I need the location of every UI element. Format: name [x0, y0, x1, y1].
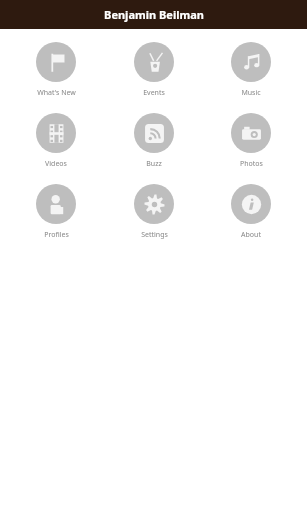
button[interactable]: Videos — [14, 113, 98, 169]
button[interactable]: What's New — [14, 42, 98, 98]
button[interactable]: About — [209, 184, 293, 240]
button[interactable]: Photos — [209, 113, 293, 169]
staticText: Music — [241, 88, 261, 98]
staticText: What's New — [37, 88, 76, 98]
staticText: Events — [143, 88, 165, 98]
staticText: Benjamin Beilman — [104, 7, 204, 22]
staticText: Videos — [45, 159, 67, 169]
button[interactable]: Buzz — [112, 113, 196, 169]
staticText: Profiles — [44, 230, 69, 240]
button[interactable]: Profiles — [14, 184, 98, 240]
staticText: Settings — [141, 230, 168, 240]
button[interactable]: Settings — [112, 184, 196, 240]
staticText: About — [241, 230, 261, 240]
button[interactable]: Events — [112, 42, 196, 98]
button[interactable]: Music — [209, 42, 293, 98]
staticText: Buzz — [146, 159, 162, 169]
staticText: Photos — [240, 159, 263, 169]
